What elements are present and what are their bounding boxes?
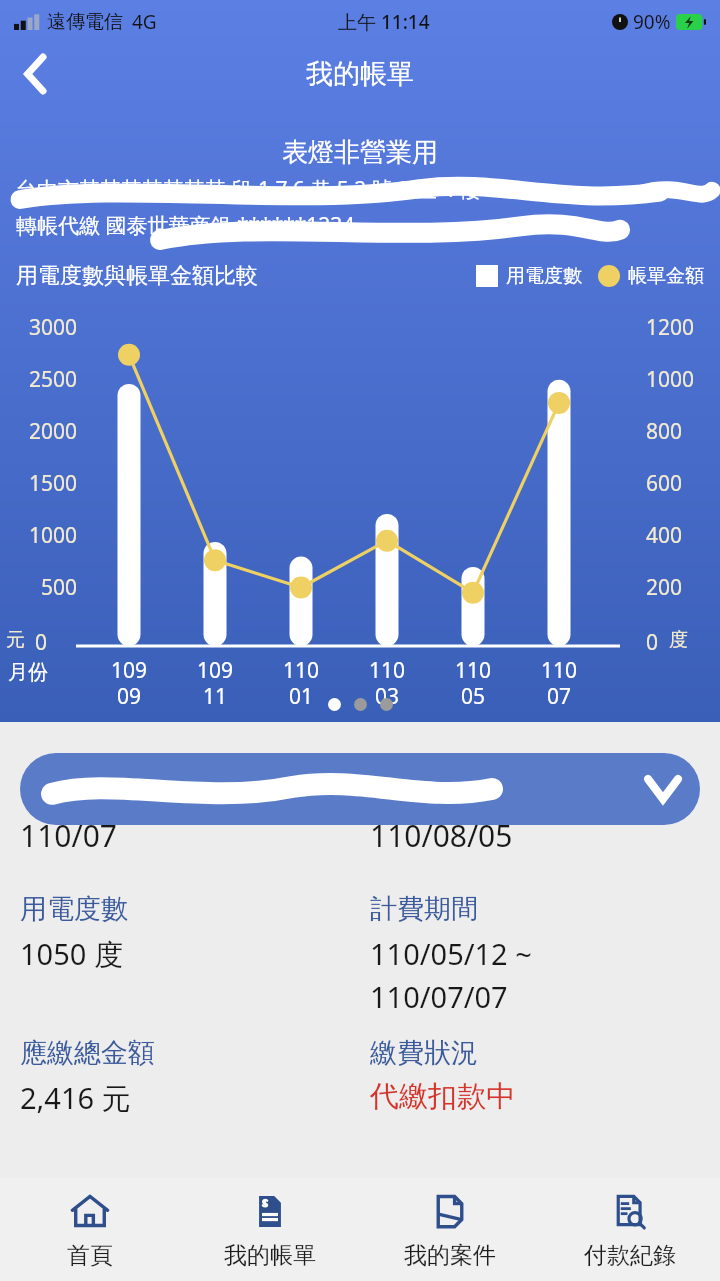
staticText: 2500 — [29, 365, 78, 394]
staticText: 轉帳代繳 國泰世華商銀 ******1234 — [16, 211, 355, 240]
staticText: 110 05 — [430, 656, 516, 711]
staticText: 109 11 — [172, 656, 258, 711]
staticText: 用電度數 — [506, 264, 582, 288]
staticText: 帳單金額 — [628, 264, 704, 288]
staticText: 3000 — [29, 313, 78, 342]
staticText: 109 09 — [86, 656, 172, 711]
staticText: 元 — [6, 628, 25, 652]
staticText: 計費期間 — [370, 892, 478, 926]
staticText: 應繳總金額 — [20, 1036, 155, 1070]
button[interactable]: 付款紀錄 — [540, 1177, 720, 1281]
staticText: 500 — [41, 573, 78, 602]
staticText: 付款紀錄 — [584, 1241, 676, 1270]
staticText: 代繳扣款中 — [370, 1078, 515, 1115]
button[interactable]: 首頁 — [0, 1177, 180, 1281]
staticText: 90% — [633, 9, 671, 35]
staticText: 遠傳電信 — [47, 10, 123, 34]
staticText: 首頁 — [67, 1241, 113, 1270]
staticText: 800 — [646, 417, 683, 446]
staticText: 我的案件 — [404, 1241, 496, 1270]
staticText: 110/07 — [20, 815, 117, 856]
staticText: 繳費狀況 — [370, 1036, 478, 1070]
button[interactable]: 我的案件 — [360, 1177, 540, 1281]
staticText: 1050 度 — [20, 934, 123, 974]
staticText: 4G — [132, 9, 157, 35]
staticText: 度 — [669, 628, 688, 652]
staticText: 110/07/07 — [370, 977, 508, 1016]
staticText: 0 — [35, 628, 48, 657]
button[interactable] — [20, 753, 700, 825]
staticText: 110 01 — [258, 656, 344, 711]
staticText: 1000 — [646, 365, 695, 394]
staticText: 2000 — [29, 417, 78, 446]
staticText: 表燈非營業用 — [0, 136, 720, 169]
staticText: 110/05/12 ~ — [370, 934, 532, 973]
staticText: 上午 11:14 — [338, 9, 430, 35]
staticText: 1500 — [29, 469, 78, 498]
staticText: 月份 — [8, 660, 48, 685]
button[interactable]: 我的帳單 — [180, 1177, 360, 1281]
staticText: 200 — [646, 573, 683, 602]
staticText: 台中市某某某某某某某 段 1 7 6 巷 5 2 號 2 至 4 樓 — [16, 175, 481, 204]
staticText: 2,416 元 — [20, 1078, 131, 1118]
staticText: 我的帳單 — [224, 1241, 316, 1270]
staticText: 0 — [646, 628, 659, 657]
staticText: 用電度數 — [20, 892, 128, 926]
staticText: 1200 — [646, 313, 695, 342]
staticText: 110/08/05 — [370, 815, 513, 856]
staticText: 400 — [646, 521, 683, 550]
staticText: 110 03 — [344, 656, 430, 711]
staticText: 1000 — [29, 521, 78, 550]
staticText: 用電度數與帳單金額比較 — [16, 262, 258, 290]
staticText: 600 — [646, 469, 683, 498]
staticText: 110 07 — [516, 656, 602, 711]
staticText: 我的帳單 — [306, 57, 414, 91]
button[interactable]: Back — [8, 46, 64, 102]
